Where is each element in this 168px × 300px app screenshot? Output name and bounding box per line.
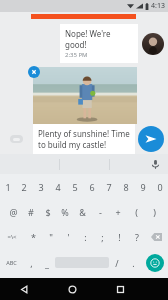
button[interactable]: ) <box>145 199 163 224</box>
staticText: 8 <box>123 181 129 193</box>
button[interactable]: Recents <box>96 278 144 300</box>
button[interactable]: Voice input <box>149 158 162 171</box>
button[interactable]: & <box>73 199 91 224</box>
staticText: 0 <box>157 181 163 193</box>
staticText: ? <box>135 231 139 243</box>
button[interactable]: Plenty of sunshine! Time to build my cas… <box>38 128 130 150</box>
staticText: 2:35 PM <box>65 51 88 59</box>
staticText: ( <box>135 206 138 218</box>
staticText: # <box>28 206 34 218</box>
staticText: ABC <box>6 259 17 266</box>
button[interactable]: 5 <box>66 174 83 199</box>
button[interactable]: Add attachment <box>10 135 23 143</box>
button[interactable]: $ <box>39 199 56 224</box>
staticText: ) <box>153 206 156 218</box>
staticText: 3 <box>38 181 44 193</box>
button[interactable]: 9 <box>134 174 151 199</box>
button[interactable]: 2 <box>16 174 32 199</box>
staticText: " <box>49 231 53 243</box>
staticText: _ <box>45 257 49 269</box>
staticText: + <box>115 206 121 218</box>
button[interactable]: " <box>42 224 60 249</box>
button[interactable]: 7 <box>100 174 117 199</box>
button[interactable]: % <box>56 199 73 224</box>
button[interactable]: Beach photo attachment <box>33 67 137 124</box>
staticText: * <box>31 231 36 243</box>
staticText: @ <box>9 206 18 218</box>
staticText: : <box>84 231 87 243</box>
staticText: 9 <box>140 181 146 193</box>
staticText: 4 <box>55 181 61 193</box>
button[interactable]: Emoji <box>146 254 164 272</box>
button[interactable]: Home <box>48 278 96 300</box>
button[interactable]: @ <box>5 199 22 224</box>
button[interactable]: ? <box>128 224 145 249</box>
button[interactable]: Remove attachment <box>28 66 40 78</box>
button[interactable]: * <box>24 224 42 249</box>
staticText: Plenty of sunshine! Time to build my cas… <box>38 128 130 150</box>
button[interactable]: ( <box>127 199 145 224</box>
staticText: 2 <box>21 181 27 193</box>
staticText: & <box>79 206 86 218</box>
button[interactable]: Backspace <box>145 224 168 249</box>
button[interactable]: Contact avatar <box>142 33 164 55</box>
button[interactable]: Send <box>138 126 164 152</box>
staticText: ' <box>67 231 70 243</box>
staticText: 4:13 <box>151 1 165 11</box>
button[interactable]: Nope! We're good! <box>65 28 133 59</box>
staticText: Nope! We're good! <box>65 28 133 50</box>
button[interactable]: : <box>77 224 94 249</box>
button[interactable]: - <box>91 199 109 224</box>
staticText: % <box>61 206 69 218</box>
staticText: 1 <box>5 181 11 193</box>
button[interactable]: _ <box>39 249 55 276</box>
button[interactable]: 4 <box>49 174 66 199</box>
button[interactable]: # <box>22 199 39 224</box>
button[interactable]: ABC <box>0 249 23 276</box>
button[interactable]: =\< <box>0 224 24 249</box>
staticText: ; <box>101 231 104 243</box>
staticText: . <box>132 257 135 269</box>
button[interactable]: 8 <box>117 174 134 199</box>
button[interactable]: ! <box>111 224 128 249</box>
button[interactable]: 6 <box>83 174 100 199</box>
button[interactable]: 1 <box>0 174 16 199</box>
staticText: $ <box>45 206 51 218</box>
staticText: =\< <box>7 233 17 241</box>
staticText: , <box>30 257 33 269</box>
staticText: 5 <box>72 181 78 193</box>
button[interactable]: ' <box>60 224 77 249</box>
button[interactable]: / <box>109 249 125 276</box>
button[interactable]: , <box>23 249 39 276</box>
button[interactable]: ; <box>94 224 111 249</box>
staticText: - <box>99 206 102 218</box>
staticText: / <box>115 257 119 269</box>
staticText: 6 <box>89 181 95 193</box>
button[interactable]: Back <box>0 278 48 300</box>
button[interactable]: 3 <box>32 174 49 199</box>
button[interactable]: 0 <box>151 174 168 199</box>
staticText: ! <box>118 231 121 243</box>
button[interactable]: + <box>109 199 127 224</box>
staticText: 7 <box>106 181 112 193</box>
button[interactable]: . <box>125 249 141 276</box>
